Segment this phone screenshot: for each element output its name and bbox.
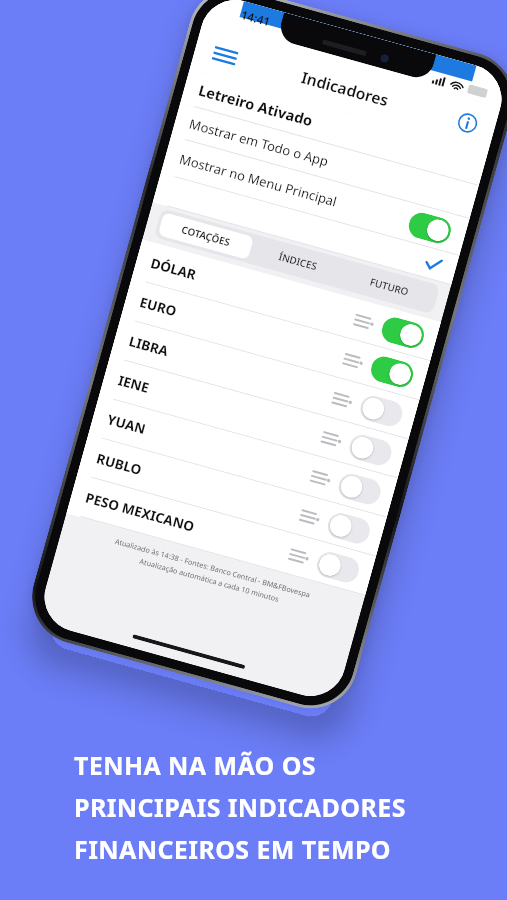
button[interactable]: Menu [203,33,246,77]
button[interactable]: Toggle [325,510,373,546]
staticText: Atualização automática a cada 10 minutos [138,556,280,605]
button[interactable]: LIBRA [110,318,419,439]
button[interactable] [153,173,459,285]
button[interactable]: RUBLO [77,435,387,557]
staticText: FINANCEIROS EM TEMPO [74,832,392,866]
button[interactable]: Toggle [346,432,394,468]
staticText: Indicadores [299,66,392,111]
button[interactable]: YUAN [88,396,398,518]
button[interactable]: PESO MEXICANO [66,474,376,596]
staticText: IENE [116,371,152,397]
button[interactable]: IENE [99,357,408,479]
button[interactable]: Toggle [368,354,416,390]
button[interactable]: Mostrar no Menu Principal [161,136,469,256]
staticText: RUBLO [94,449,144,479]
staticText: COTAÇÕES [180,223,232,249]
staticText: ÍNDICES [277,250,319,273]
staticText: EURO [138,292,179,320]
button[interactable]: COTAÇÕES [157,212,254,260]
button[interactable]: Toggle [379,315,427,351]
staticText: 14:41 [239,6,273,29]
button[interactable]: Toggle [406,210,454,246]
button[interactable]: Info [448,103,486,141]
button[interactable]: FUTURO [341,263,436,311]
staticText: DÓLAR [148,253,199,284]
staticText: YUAN [105,410,148,438]
button[interactable]: DÓLAR [131,239,441,361]
staticText: PESO MEXICANO [83,488,197,536]
staticText: S: -0,38% POUPAN [305,21,411,62]
staticText: Mostrar em Todo o App [187,115,331,171]
button[interactable]: Toggle [314,549,362,585]
staticText: TENHA NA MÃO OS [74,748,317,782]
button[interactable]: Letreiro Ativado [180,69,488,186]
button[interactable]: Toggle [336,471,384,507]
staticText: Letreiro Ativado [196,80,316,131]
button[interactable]: EURO [121,278,430,400]
staticText: Atualizado às 14:38 - Fontes: Banco Cent… [113,536,311,601]
staticText: FUTURO [368,275,410,299]
button[interactable]: Mostrar em Todo o App [171,103,479,219]
button[interactable]: Toggle [357,393,405,429]
staticText: LIBRA [127,331,171,360]
staticText: PRINCIPAIS INDICADORES [74,790,406,824]
button[interactable]: ÍNDICES [250,238,345,285]
staticText: Mostrar no Menu Principal [177,150,339,211]
